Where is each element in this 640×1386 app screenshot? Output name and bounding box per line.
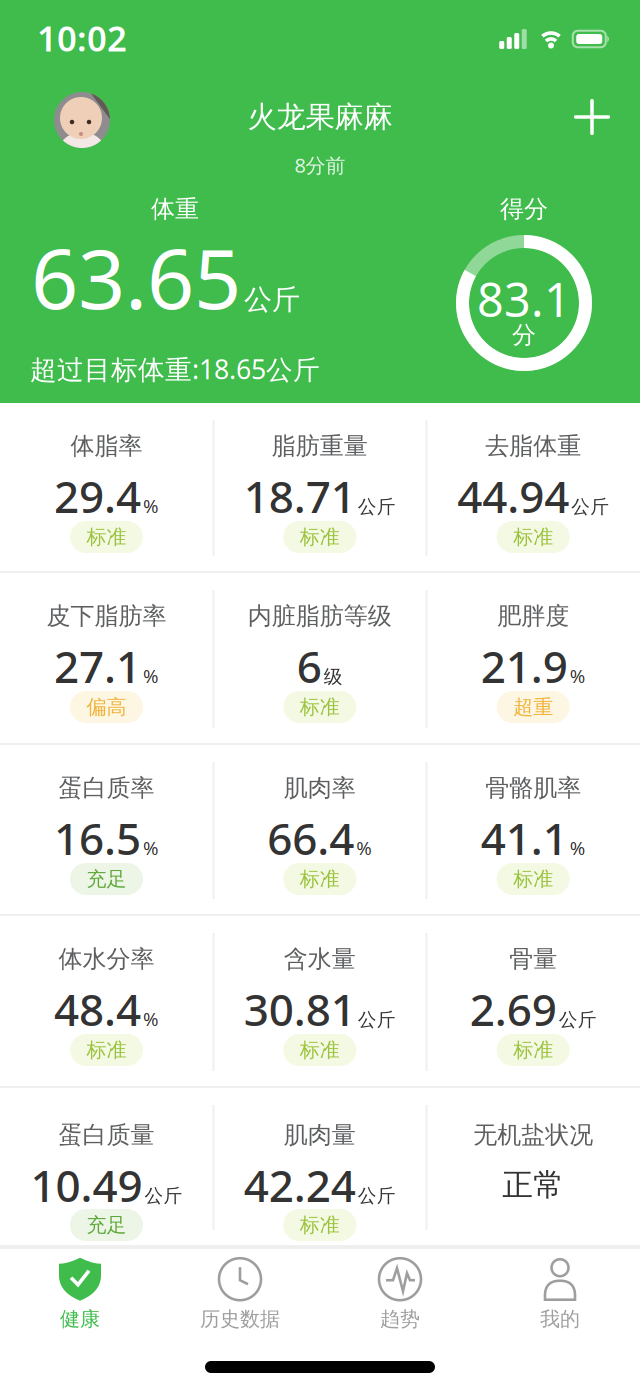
staticText: 27.1: [54, 637, 141, 695]
staticText: %: [570, 835, 586, 860]
staticText: 16.5: [54, 809, 141, 867]
button[interactable]: 肌肉量: [213, 1088, 427, 1247]
staticText: 去脂体重: [485, 431, 581, 461]
staticText: 趋势: [380, 1307, 420, 1331]
staticText: 体脂率: [70, 431, 142, 461]
staticText: 公斤: [358, 1008, 396, 1031]
staticText: 偏高: [86, 695, 126, 719]
staticText: %: [143, 493, 159, 518]
staticText: 肥胖度: [497, 601, 569, 631]
staticText: 2.69: [470, 980, 557, 1038]
staticText: 蛋白质量: [58, 1120, 154, 1150]
button[interactable]: 我的: [485, 1257, 635, 1331]
button[interactable]: 内脏脂肪等级: [213, 573, 427, 745]
staticText: 48.4: [54, 980, 141, 1038]
staticText: 标准: [513, 525, 553, 549]
staticText: 公斤: [358, 495, 396, 518]
staticText: %: [356, 835, 372, 860]
staticText: 超重: [513, 695, 553, 719]
staticText: 我的: [540, 1307, 580, 1331]
button[interactable]: 皮下脂肪率: [0, 573, 213, 745]
staticText: %: [143, 663, 159, 688]
staticText: 18.71: [244, 467, 356, 525]
staticText: 42.24: [244, 1156, 356, 1214]
staticText: 标准: [300, 1038, 340, 1062]
staticText: 标准: [86, 1038, 126, 1062]
staticText: 44.94: [457, 467, 569, 525]
staticText: 体水分率: [58, 944, 154, 974]
staticText: 21.9: [481, 637, 568, 695]
button[interactable]: 蛋白质率: [0, 745, 213, 916]
staticText: 皮下脂肪率: [46, 601, 166, 631]
staticText: 体重: [151, 194, 199, 224]
staticText: 无机盐状况: [473, 1120, 593, 1150]
button[interactable]: 体水分率: [0, 916, 213, 1088]
staticText: 标准: [86, 525, 126, 549]
staticText: 含水量: [284, 944, 356, 974]
button[interactable]: 健康: [5, 1257, 155, 1331]
staticText: 骨骼肌率: [485, 773, 581, 803]
staticText: 公斤: [144, 1184, 182, 1207]
staticText: 标准: [300, 525, 340, 549]
staticText: 脂肪重量: [272, 431, 368, 461]
staticText: 30.81: [244, 980, 356, 1038]
button[interactable]: 骨骼肌率: [427, 745, 640, 916]
button[interactable]: 肌肉率: [213, 745, 427, 916]
button[interactable]: 无机盐状况: [427, 1088, 640, 1247]
button[interactable]: 趋势: [325, 1257, 475, 1331]
button[interactable]: 历史数据: [165, 1257, 315, 1331]
staticText: 8分前: [294, 152, 345, 178]
staticText: 骨量: [509, 944, 557, 974]
staticText: 级: [324, 665, 343, 688]
staticText: 29.4: [54, 467, 141, 525]
staticText: 蛋白质率: [58, 773, 154, 803]
button[interactable]: 肥胖度: [427, 573, 640, 745]
staticText: %: [143, 835, 159, 860]
staticText: 火龙果麻麻: [247, 99, 392, 135]
staticText: 健康: [60, 1307, 100, 1331]
staticText: 41.1: [481, 809, 568, 867]
staticText: 充足: [86, 1213, 126, 1237]
staticText: 分: [512, 320, 536, 350]
staticText: 66.4: [267, 809, 354, 867]
staticText: 公斤: [559, 1008, 597, 1031]
staticText: 公斤: [358, 1184, 396, 1207]
staticText: 公斤: [244, 283, 300, 317]
staticText: 历史数据: [200, 1307, 280, 1331]
staticText: 肌肉率: [284, 773, 356, 803]
button[interactable]: 含水量: [213, 916, 427, 1088]
staticText: %: [570, 663, 586, 688]
button[interactable]: 去脂体重: [427, 403, 640, 573]
button[interactable]: 蛋白质量: [0, 1088, 213, 1247]
staticText: 标准: [513, 1038, 553, 1062]
button[interactable]: 脂肪重量: [213, 403, 427, 573]
staticText: 公斤: [571, 495, 609, 518]
button[interactable]: 骨量: [427, 916, 640, 1088]
button[interactable]: 添加: [572, 97, 612, 137]
staticText: %: [143, 1006, 159, 1031]
staticText: 内脏脂肪等级: [248, 601, 392, 631]
staticText: 83.1: [477, 268, 571, 330]
staticText: 标准: [300, 1213, 340, 1237]
staticText: 标准: [300, 867, 340, 891]
staticText: 得分: [500, 194, 548, 224]
button[interactable]: 用户头像: [54, 92, 110, 148]
staticText: 63.65: [31, 222, 241, 332]
staticText: 6: [297, 637, 322, 695]
staticText: 标准: [300, 695, 340, 719]
staticText: 标准: [513, 867, 553, 891]
staticText: 10:02: [37, 15, 127, 61]
staticText: 正常: [502, 1166, 564, 1204]
staticText: 10.49: [30, 1156, 142, 1214]
button[interactable]: 体脂率: [0, 403, 213, 573]
staticText: 充足: [86, 867, 126, 891]
staticText: 超过目标体重:18.65公斤: [30, 351, 320, 387]
staticText: 肌肉量: [284, 1120, 356, 1150]
